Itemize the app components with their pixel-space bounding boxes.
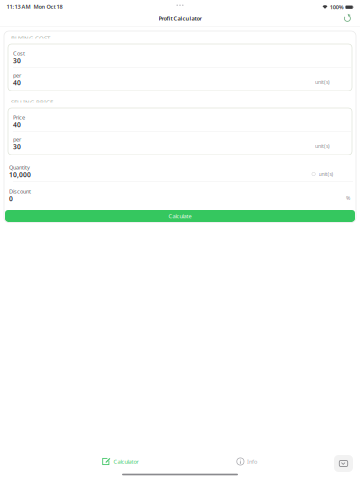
button[interactable]: per: [8, 131, 352, 155]
staticText: Discount: [9, 187, 31, 195]
staticText: unit(s): [318, 170, 333, 178]
button[interactable]: Reset: [339, 11, 357, 26]
staticText: per: [13, 135, 21, 143]
button[interactable]: Info: [237, 455, 257, 468]
staticText: unit(s): [315, 142, 330, 150]
staticText: 30: [13, 56, 21, 65]
staticText: per: [13, 71, 21, 79]
staticText: 0: [9, 194, 13, 203]
staticText: unit(s): [315, 78, 330, 86]
staticText: 40: [13, 78, 21, 87]
button[interactable]: Hide keyboard: [334, 455, 353, 472]
staticText: 100%: [330, 3, 344, 11]
button[interactable]: Calculator: [102, 455, 138, 468]
staticText: Quantity: [9, 163, 30, 171]
staticText: Cost: [13, 49, 25, 57]
button[interactable]: per: [8, 67, 352, 91]
button[interactable]: Cost: [8, 44, 352, 67]
staticText: BUYING COST: [11, 34, 50, 42]
staticText: Profit Calculator: [158, 14, 201, 22]
staticText: 10,000: [9, 170, 31, 179]
staticText: 30: [13, 142, 21, 151]
staticText: 11:13 AM Mon Oct 18: [6, 3, 62, 10]
staticText: SELLING PRICE: [11, 98, 53, 106]
staticText: Calculate: [168, 212, 191, 220]
staticText: Price: [13, 113, 25, 121]
button[interactable]: Calculate: [5, 210, 355, 222]
staticText: 40: [13, 120, 21, 129]
staticText: Calculator: [113, 458, 138, 465]
button[interactable]: Price: [8, 108, 352, 131]
staticText: %: [346, 194, 350, 202]
button[interactable]: Discount: [4, 181, 356, 205]
button[interactable]: Quantity: [4, 158, 356, 181]
staticText: Info: [247, 458, 257, 465]
